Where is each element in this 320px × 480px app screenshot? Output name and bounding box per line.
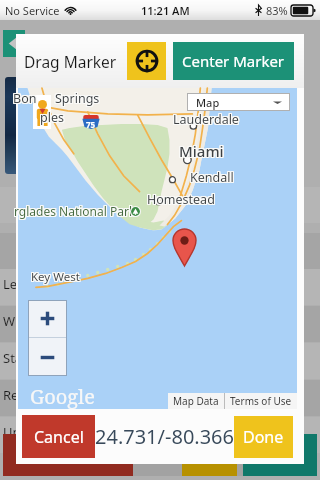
staticText: Record — [3, 386, 46, 404]
staticText: Wind speed — [3, 312, 75, 330]
staticText: Upload — [3, 423, 48, 441]
staticText: rglades National Park — [15, 202, 137, 218]
staticText: Key West — [30, 268, 79, 284]
button[interactable] — [3, 434, 133, 476]
button[interactable]: Map — [187, 93, 290, 111]
staticText: Lauderdale — [173, 110, 239, 127]
staticText: Bon — [12, 91, 36, 108]
staticText: Springs — [54, 89, 99, 106]
staticText: Lauderdale — [172, 111, 238, 128]
staticText: Springs — [55, 91, 100, 108]
staticText: Kendall — [189, 169, 233, 186]
staticText: rglades National Park — [13, 202, 135, 218]
staticText: Homestead — [147, 191, 215, 208]
staticText: Kendall — [190, 168, 234, 185]
staticText: rglades National Park — [15, 204, 137, 220]
staticText: Level — [3, 275, 35, 293]
button[interactable] — [133, 434, 182, 476]
staticText: Bon — [12, 90, 36, 107]
button[interactable] — [0, 187, 320, 223]
staticText: Key West — [32, 270, 81, 286]
button[interactable] — [0, 380, 320, 416]
staticText: Key West — [31, 269, 80, 285]
staticText: Lauderdale — [174, 110, 240, 127]
button[interactable] — [0, 417, 320, 453]
staticText: ples — [41, 109, 65, 126]
staticText: Bon — [14, 91, 38, 108]
staticText: Homestead — [146, 192, 214, 209]
staticText: Kendall — [189, 168, 233, 185]
staticText: Miami — [178, 141, 223, 161]
staticText: Bon — [14, 90, 38, 107]
staticText: Lauderdale — [174, 111, 240, 128]
button[interactable]: Terms of Use — [230, 393, 292, 409]
staticText: ples — [39, 109, 63, 126]
button[interactable]: Center Marker — [173, 42, 294, 80]
staticText: ples — [41, 110, 65, 127]
staticText: Homestead — [148, 192, 216, 209]
staticText: 83% — [266, 3, 288, 18]
staticText: Homestead — [148, 191, 216, 208]
staticText: 75 — [86, 119, 96, 130]
staticText: Miami — [179, 140, 224, 160]
staticText: Miami — [180, 140, 225, 160]
staticText: No Service — [5, 3, 60, 18]
staticText: Center Marker — [182, 51, 285, 71]
staticText: Kendall — [189, 170, 233, 187]
staticText: 24.731/-80.366 — [95, 423, 234, 450]
button[interactable] — [0, 233, 320, 269]
button[interactable] — [243, 434, 317, 476]
staticText: Lauderdale — [173, 111, 239, 128]
staticText: Station — [3, 349, 47, 367]
staticText: Kendall — [191, 170, 235, 187]
staticText: Kendall — [190, 169, 234, 186]
staticText: Kendall — [190, 170, 234, 187]
button[interactable] — [182, 434, 237, 476]
button[interactable]: Center on marker — [127, 42, 166, 80]
staticText: Key West — [32, 268, 81, 284]
staticText: Miami — [178, 142, 223, 162]
staticText: Lauderdale — [174, 112, 240, 129]
button[interactable] — [5, 77, 23, 174]
staticText: rglades National Park — [14, 202, 136, 218]
staticText: Miami — [179, 142, 224, 162]
staticText: Lauderdale — [173, 112, 239, 129]
staticText: ples — [39, 110, 63, 127]
button[interactable]: Back — [3, 30, 25, 57]
staticText: Springs — [55, 89, 100, 106]
staticText: rglades National Park — [14, 203, 136, 219]
staticText: Miami — [180, 142, 225, 162]
staticText: Springs — [54, 91, 99, 108]
staticText: Done — [243, 426, 284, 448]
button[interactable]: Zoom in — [28, 300, 67, 337]
button[interactable]: Done — [234, 416, 293, 458]
staticText: ples — [41, 108, 65, 125]
staticText: rglades National Park — [13, 203, 135, 219]
staticText: Springs — [56, 90, 101, 107]
button[interactable]: Cancel — [22, 415, 95, 458]
staticText: ples — [40, 109, 64, 126]
button[interactable] — [0, 343, 320, 379]
staticText: Cancel — [34, 426, 84, 448]
staticText: Key West — [30, 270, 79, 286]
button[interactable] — [0, 306, 320, 342]
staticText: Map Data — [173, 394, 219, 408]
staticText: ples — [39, 108, 63, 125]
staticText: Homestead — [146, 190, 214, 207]
staticText: Homestead — [147, 190, 215, 207]
staticText: Homestead — [147, 192, 215, 209]
staticText: rglades National Park — [15, 203, 137, 219]
staticText: Bon — [13, 91, 37, 108]
button[interactable]: Zoom out — [28, 338, 67, 376]
staticText: Lauderdale — [172, 110, 238, 127]
staticText: rglades National Park — [13, 204, 135, 220]
button[interactable]: Street View — [33, 95, 51, 129]
button[interactable] — [0, 269, 320, 305]
staticText: Springs — [56, 91, 101, 108]
staticText: Miami — [178, 140, 223, 160]
staticText: Key West — [32, 269, 81, 285]
staticText: Bon — [13, 90, 37, 107]
button[interactable]: Map Data — [173, 393, 219, 409]
staticText: Homestead — [148, 190, 216, 207]
staticText: Springs — [55, 90, 100, 107]
